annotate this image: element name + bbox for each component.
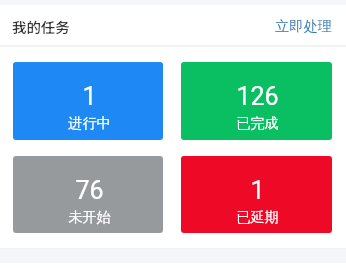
button[interactable]: 1 — [13, 62, 163, 140]
button[interactable]: 1 — [181, 156, 332, 233]
staticText: 进行中 — [68, 114, 111, 132]
button[interactable]: 126 — [181, 62, 332, 140]
staticText: 未开始 — [68, 208, 111, 226]
button[interactable]: 76 — [13, 156, 163, 233]
staticText: 1 — [82, 82, 97, 111]
button[interactable]: 立即处理 — [275, 15, 332, 37]
staticText: 已完成 — [236, 114, 279, 132]
staticText: 我的任务 — [12, 16, 70, 37]
staticText: 126 — [236, 82, 279, 111]
staticText: 76 — [75, 176, 104, 205]
staticText: 立即处理 — [275, 17, 332, 35]
staticText: 1 — [250, 176, 265, 205]
staticText: 已延期 — [236, 208, 279, 226]
